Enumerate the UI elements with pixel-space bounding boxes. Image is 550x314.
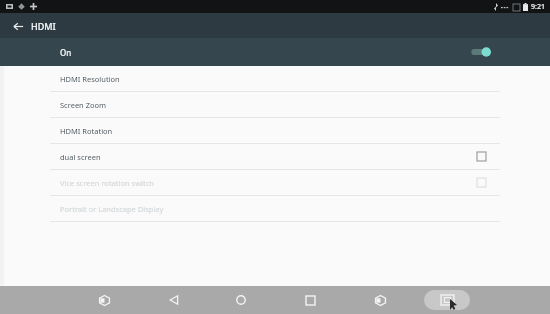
button[interactable]: dual screen (0, 144, 550, 169)
button[interactable]: HDMI Rotation (0, 118, 550, 143)
button[interactable]: On (0, 38, 550, 66)
button[interactable]: HDMI on switch (470, 45, 492, 59)
staticText: HDMI (31, 20, 56, 32)
staticText: HDMI Resolution (60, 74, 120, 84)
staticText: Portrait or Landscape Display (60, 204, 164, 214)
button[interactable]: Back (8, 16, 28, 36)
button[interactable]: Recent apps (299, 289, 321, 311)
button[interactable]: Screen Zoom (0, 92, 550, 117)
button[interactable]: Volume up (369, 289, 391, 311)
button[interactable]: HDMI Resolution (0, 66, 550, 91)
button[interactable]: Vice screen rotation switch (0, 170, 550, 195)
staticText: On (60, 47, 72, 58)
staticText: Vice screen rotation switch (60, 178, 154, 188)
staticText: 9:21 (531, 2, 545, 12)
button[interactable]: Volume down (93, 289, 115, 311)
button[interactable]: Portrait or Landscape Display (0, 196, 550, 221)
staticText: HDMI Rotation (60, 126, 113, 136)
staticText: Screen Zoom (60, 100, 107, 110)
button[interactable]: Home (230, 289, 252, 311)
button[interactable]: Back (163, 289, 185, 311)
staticText: dual screen (60, 152, 101, 162)
button[interactable]: Screenshot (436, 289, 458, 311)
